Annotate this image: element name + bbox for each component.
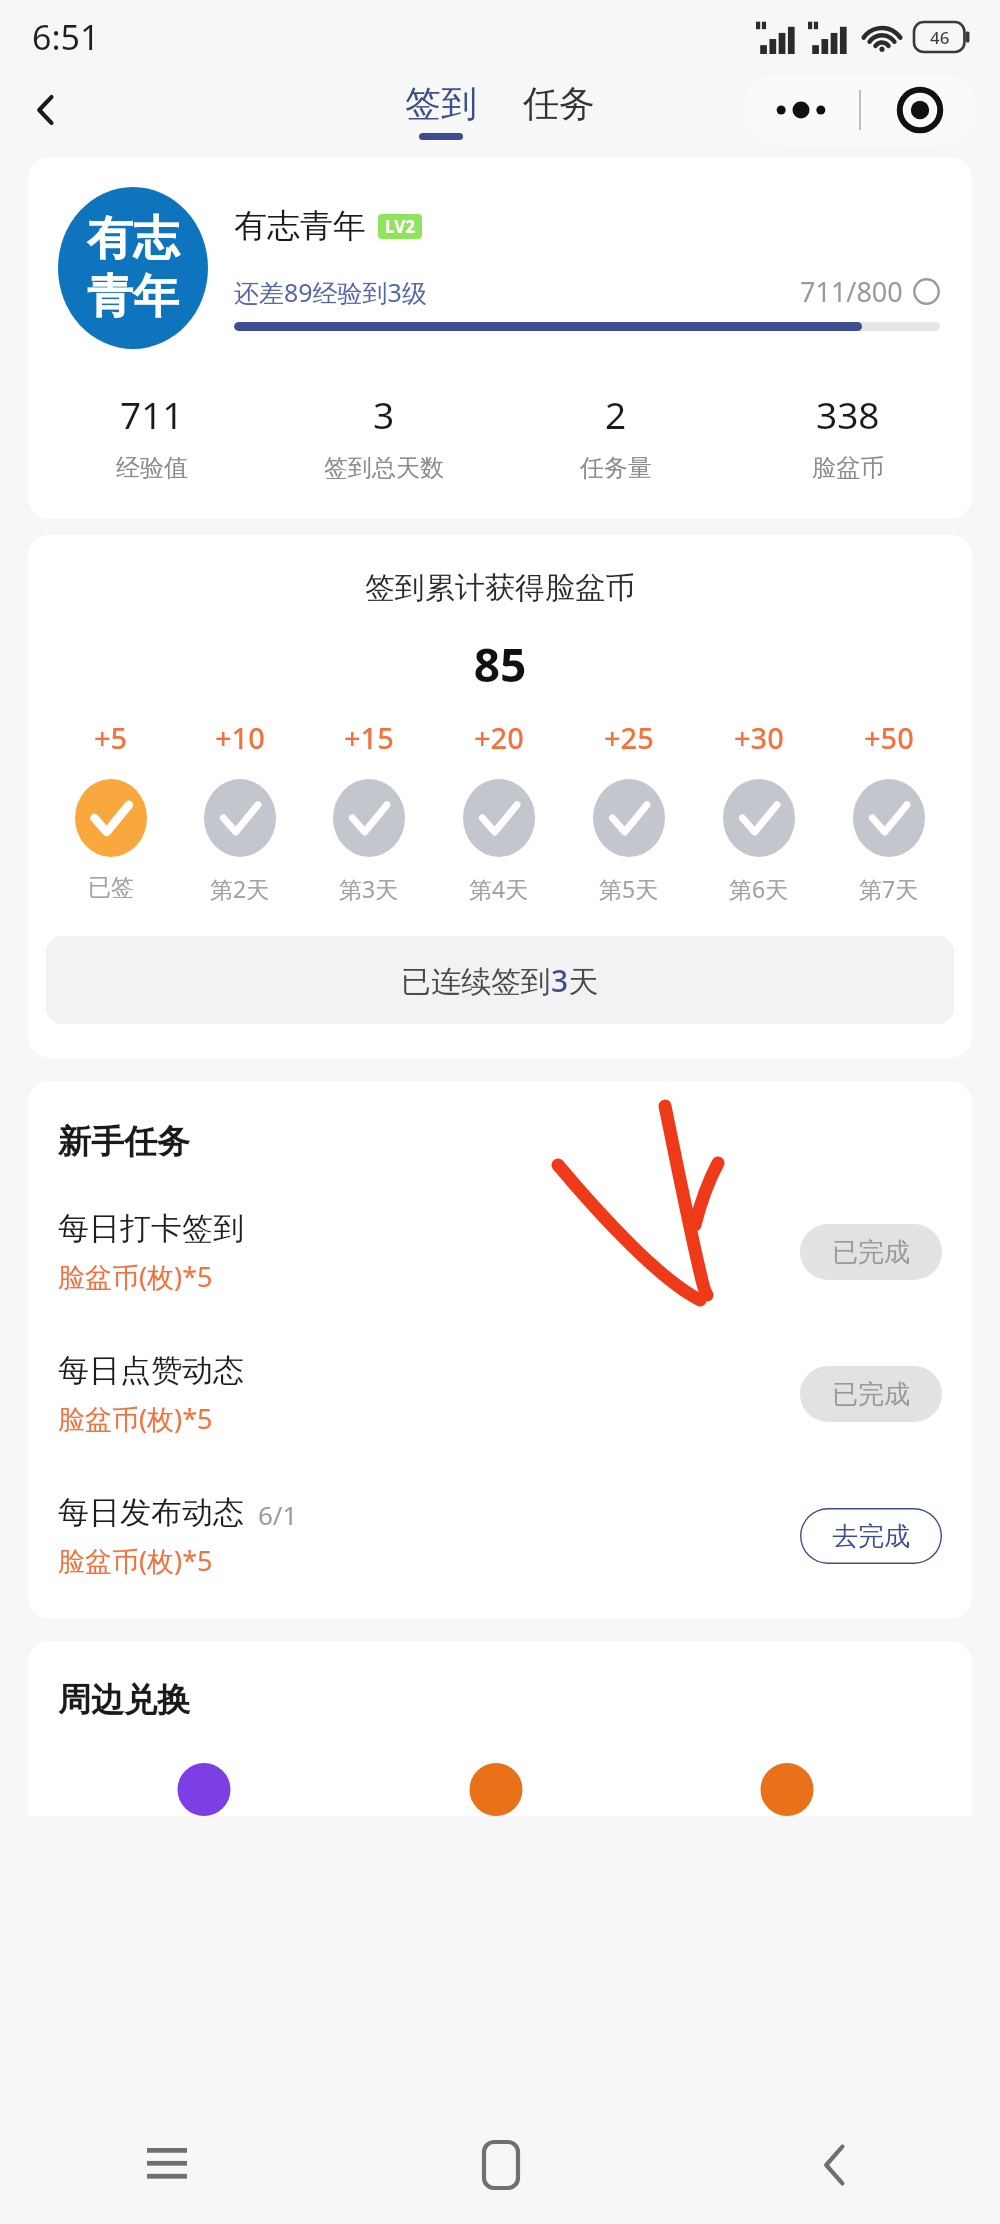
staticText: 第5天 xyxy=(599,873,659,904)
button[interactable]: 每日发布动态 xyxy=(58,1493,942,1579)
button[interactable]: 每日打卡签到 xyxy=(58,1209,942,1295)
staticText: 85 xyxy=(28,633,972,696)
staticText: 第2天 xyxy=(210,873,270,904)
button[interactable]: +5 xyxy=(46,718,175,902)
staticText: 3 xyxy=(373,389,395,439)
button[interactable]: +20 xyxy=(434,718,564,904)
button[interactable]: 去完成 xyxy=(800,1508,942,1564)
staticText: +25 xyxy=(604,718,654,757)
staticText: 6:51 xyxy=(32,14,100,60)
button[interactable]: +15 xyxy=(304,718,434,904)
staticText: +15 xyxy=(344,718,394,757)
button[interactable]: 已连续签到3天 xyxy=(46,936,954,1024)
button[interactable]: 711 xyxy=(36,389,268,483)
staticText: 第4天 xyxy=(469,873,529,904)
staticText: 青年 xyxy=(87,268,179,326)
button[interactable]: 有志 xyxy=(58,187,940,349)
staticText: 有志 xyxy=(87,210,179,268)
staticText: 有志青年 xyxy=(234,205,366,247)
button[interactable]: Back xyxy=(14,78,78,142)
button[interactable]: 2 xyxy=(500,389,732,483)
staticText: 去完成 xyxy=(832,1520,910,1553)
button[interactable]: 每日点赞动态 xyxy=(58,1351,942,1437)
staticText: 签到总天数 xyxy=(324,453,444,483)
staticText: 任务量 xyxy=(580,453,652,483)
button[interactable]: 任务 xyxy=(513,88,605,133)
staticText: 脸盆币 xyxy=(812,453,884,483)
button[interactable]: +25 xyxy=(564,718,694,904)
button[interactable]: More options xyxy=(742,74,859,146)
button[interactable]: +30 xyxy=(694,718,824,904)
button[interactable]: +50 xyxy=(824,718,954,904)
staticText: 脸盆币(枚)*5 xyxy=(58,1258,213,1295)
staticText: 还差89经验到3级 xyxy=(234,275,427,309)
staticText: 每日打卡签到 xyxy=(58,1209,244,1248)
button[interactable]: Home xyxy=(334,2105,667,2224)
staticText: LV2 xyxy=(385,215,415,238)
staticText: 46 xyxy=(930,26,950,49)
staticText: 已签 xyxy=(88,873,134,902)
staticText: 2 xyxy=(605,389,627,439)
staticText: 签到 xyxy=(405,81,477,126)
staticText: 任务 xyxy=(523,81,595,126)
button[interactable]: +10 xyxy=(175,718,304,904)
staticText: 签到累计获得脸盆币 xyxy=(28,569,972,607)
button[interactable]: 338 xyxy=(732,389,964,483)
staticText: 脸盆币(枚)*5 xyxy=(58,1400,213,1437)
button[interactable]: 3 xyxy=(268,389,500,483)
staticText: 6/1 xyxy=(258,1497,298,1532)
staticText: 已完成 xyxy=(832,1378,910,1411)
button[interactable]: Back xyxy=(667,2105,1000,2224)
staticText: 经验值 xyxy=(116,453,188,483)
staticText: 每日发布动态 xyxy=(58,1493,244,1532)
staticText: 新手任务 xyxy=(58,1121,190,1163)
staticText: 711/800 xyxy=(800,273,903,310)
staticText: 338 xyxy=(816,389,880,439)
staticText: +5 xyxy=(94,718,128,757)
staticText: 第6天 xyxy=(729,873,789,904)
button[interactable]: Close xyxy=(861,74,978,146)
staticText: 第7天 xyxy=(859,873,919,904)
button[interactable]: 已完成 xyxy=(800,1366,942,1422)
button[interactable]: Recent apps xyxy=(0,2105,334,2224)
staticText: 脸盆币(枚)*5 xyxy=(58,1542,213,1579)
staticText: 711 xyxy=(120,389,184,439)
staticText: +50 xyxy=(864,718,914,757)
button[interactable]: 已完成 xyxy=(800,1224,942,1280)
staticText: 已完成 xyxy=(832,1236,910,1269)
staticText: +10 xyxy=(215,718,265,757)
staticText: 已连续签到3天 xyxy=(401,960,599,1001)
staticText: 第3天 xyxy=(339,873,399,904)
staticText: 每日点赞动态 xyxy=(58,1351,244,1390)
staticText: +20 xyxy=(474,718,524,757)
staticText: +30 xyxy=(734,718,784,757)
staticText: 周边兑换 xyxy=(58,1679,190,1721)
button[interactable]: 签到 xyxy=(395,81,487,140)
